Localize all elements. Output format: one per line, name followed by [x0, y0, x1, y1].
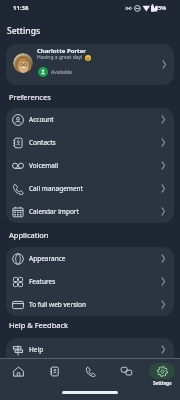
staticText: Call management — [29, 184, 83, 193]
button[interactable]: Chats — [108, 363, 144, 379]
staticText: Voicemail — [29, 161, 59, 170]
staticText: Feedback — [29, 368, 58, 377]
button[interactable]: Call management — [6, 177, 174, 200]
staticText: Help & Feedback — [9, 320, 69, 330]
staticText: Having a great day! — [37, 54, 83, 61]
button[interactable]: Feedback — [6, 361, 174, 384]
staticText: Settings — [7, 25, 41, 37]
button[interactable]: Features — [6, 270, 174, 293]
button[interactable]: To full web version — [6, 293, 174, 316]
button[interactable]: Calendar import — [6, 200, 174, 223]
staticText: Application — [9, 230, 49, 240]
button[interactable]: Settings — [144, 363, 180, 386]
staticText: 11:38 — [13, 4, 29, 12]
staticText: Appearance — [29, 254, 66, 263]
staticText: Features — [29, 277, 56, 286]
button[interactable]: Calls — [72, 363, 108, 379]
staticText: To full web version — [29, 300, 86, 309]
staticText: Available — [51, 69, 73, 76]
staticText: 85% — [155, 4, 167, 11]
button[interactable]: Voicemail — [6, 154, 174, 177]
staticText: Contacts — [29, 138, 56, 147]
staticText: Charlotte Porter — [37, 47, 86, 55]
button[interactable]: Contacts — [6, 131, 174, 154]
button[interactable]: Account — [6, 108, 174, 131]
button[interactable]: Charlotte Porter — [6, 44, 174, 85]
staticText: Account — [29, 115, 54, 124]
staticText: Calendar import — [29, 207, 79, 216]
staticText: Preferences — [9, 92, 51, 102]
staticText: Help — [29, 345, 44, 354]
button[interactable]: Home — [0, 363, 36, 379]
button[interactable]: Appearance — [6, 247, 174, 270]
staticText: Settings — [153, 380, 172, 386]
button[interactable]: Help — [6, 338, 174, 361]
button[interactable]: Contacts — [36, 363, 72, 379]
